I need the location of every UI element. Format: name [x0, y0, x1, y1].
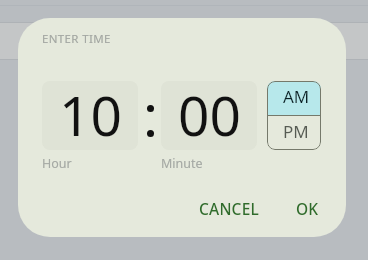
- staticText: OK: [296, 198, 319, 219]
- staticText: ENTER TIME: [42, 31, 111, 47]
- staticText: 10: [59, 81, 122, 146]
- staticText: AM: [283, 85, 310, 108]
- staticText: Minute: [161, 155, 203, 172]
- button[interactable]: Minute, 00: [161, 81, 257, 150]
- staticText: CANCEL: [199, 198, 259, 219]
- button[interactable]: CANCEL: [187, 192, 271, 225]
- staticText: Hour: [42, 155, 72, 172]
- staticText: PM: [283, 120, 309, 143]
- button[interactable]: Hour, 10: [42, 81, 138, 150]
- button[interactable]: OK: [284, 192, 331, 225]
- button[interactable]: AM: [267, 81, 321, 115]
- staticText: 00: [178, 81, 241, 146]
- button[interactable]: PM: [267, 116, 321, 150]
